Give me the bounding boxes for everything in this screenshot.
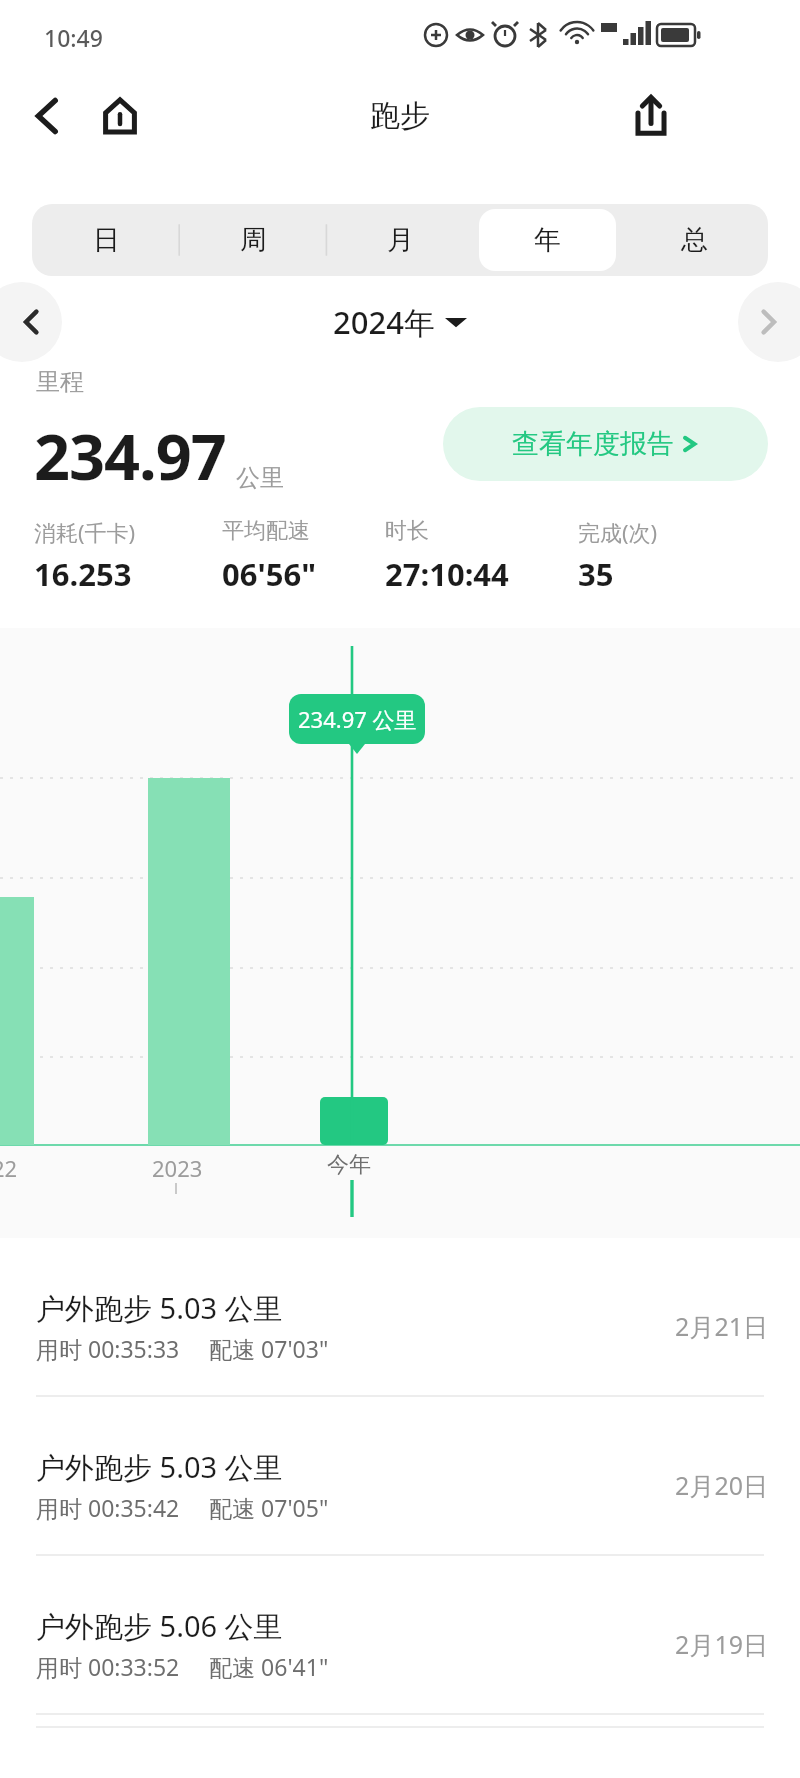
staticText: 户外跑步 5.03 公里 [36, 1447, 283, 1487]
button[interactable]: Back [18, 85, 78, 147]
staticText: 10:49 [44, 22, 103, 53]
staticText: 今年 [327, 1151, 371, 1179]
staticText: 里程 [36, 367, 84, 397]
button[interactable]: 周 [185, 209, 322, 271]
staticText: 日 [93, 223, 120, 257]
button[interactable]: Previous year [0, 282, 62, 362]
staticText: 消耗(千卡) [34, 517, 136, 547]
staticText: 平均配速 [222, 517, 310, 545]
staticText: 用时 00:35:42 配速 07'05" [36, 1492, 329, 1523]
staticText: 查看年度报告 [512, 427, 674, 461]
staticText: 22 [0, 1153, 18, 1183]
staticText: 户外跑步 5.03 公里 [36, 1288, 283, 1328]
staticText: 234.97 [34, 413, 226, 499]
button[interactable]: 查看年度报告 [443, 407, 768, 481]
staticText: 周 [240, 223, 267, 257]
staticText: 2023 [152, 1153, 203, 1183]
staticText: 2月19日 [0, 1627, 768, 1661]
button[interactable]: Home [90, 85, 150, 147]
button[interactable]: Next year [738, 282, 800, 362]
staticText: 27:10:44 [385, 553, 509, 595]
button[interactable]: 2024年 [0, 282, 800, 362]
staticText: 总 [681, 223, 708, 257]
staticText: 234.97 公里 [298, 704, 417, 734]
button[interactable]: 户外跑步 5.03 公里 [0, 1238, 800, 1397]
button[interactable]: 年 [479, 209, 616, 271]
button[interactable]: 日 [37, 209, 175, 271]
staticText: 公里 [236, 463, 284, 493]
staticText: 用时 00:33:52 配速 06'41" [36, 1651, 329, 1682]
staticText: 2月21日 [0, 1309, 768, 1343]
button[interactable]: 户外跑步 5.06 公里 [0, 1556, 800, 1715]
staticText: 2024年 [333, 301, 435, 343]
staticText: 月 [387, 223, 414, 257]
button[interactable]: 总 [626, 209, 763, 271]
button[interactable]: 户外跑步 5.03 公里 [0, 1397, 800, 1556]
staticText: 年 [534, 223, 561, 257]
button[interactable]: Share [620, 85, 682, 147]
staticText: 用时 00:35:33 配速 07'03" [36, 1333, 329, 1364]
button[interactable]: 月 [332, 209, 469, 271]
staticText: 跑步 [370, 97, 430, 135]
staticText: 16.253 [34, 553, 132, 595]
staticText: 35 [578, 553, 614, 595]
staticText: 完成(次) [578, 517, 658, 547]
staticText: 2月20日 [0, 1468, 768, 1502]
staticText: 户外跑步 5.06 公里 [36, 1606, 283, 1646]
staticText: 时长 [385, 517, 429, 545]
staticText: 06'56" [222, 553, 317, 595]
